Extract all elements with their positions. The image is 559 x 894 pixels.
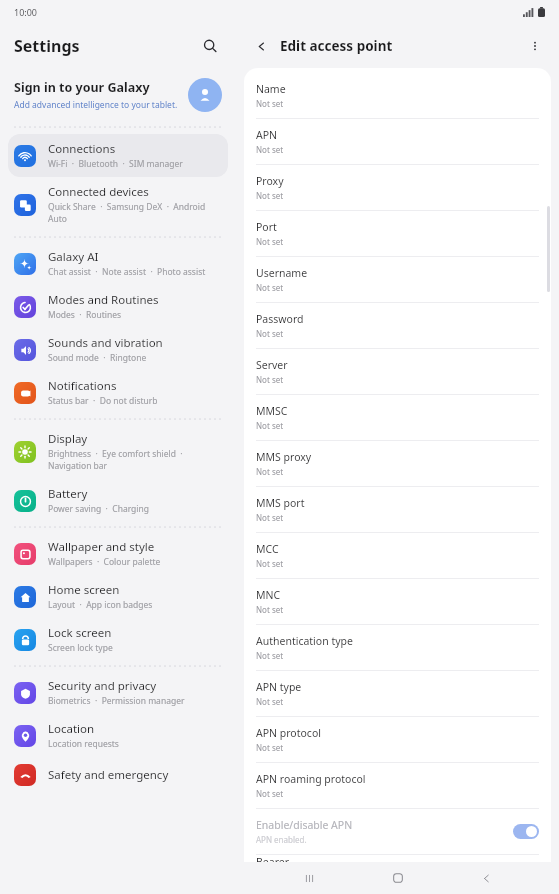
staticText: Biometrics · Permission manager (48, 695, 185, 707)
button[interactable]: Bearer (244, 855, 551, 862)
staticText: APN roaming protocol (256, 772, 366, 786)
staticText: Not set (256, 236, 284, 247)
staticText: Not set (256, 374, 284, 385)
staticText: Screen lock type (48, 642, 113, 654)
button[interactable]: APN protocol (244, 717, 551, 762)
staticText: Notifications (48, 378, 117, 394)
staticText: Location (48, 721, 95, 737)
staticText: Modes and Routines (48, 292, 159, 308)
staticText: Home screen (48, 582, 120, 598)
staticText: Not set (256, 650, 284, 661)
staticText: Not set (256, 512, 284, 523)
button[interactable]: More options (523, 34, 547, 58)
button[interactable]: APN (244, 119, 551, 164)
staticText: Connections (48, 141, 116, 157)
button[interactable]: Wallpaper and style (8, 532, 228, 575)
staticText: MMSC (256, 404, 288, 418)
button[interactable]: Safety and emergency (8, 757, 228, 793)
staticText: Galaxy AI (48, 249, 99, 265)
staticText: Wallpapers · Colour palette (48, 556, 161, 568)
staticText: APN (256, 128, 278, 142)
button[interactable]: Name (244, 73, 551, 118)
staticText: Wi-Fi · Bluetooth · SIM manager (48, 158, 183, 170)
staticText: Lock screen (48, 625, 112, 641)
button[interactable]: Username (244, 257, 551, 302)
button[interactable]: Lock screen (8, 618, 228, 661)
staticText: Not set (256, 282, 284, 293)
button[interactable]: Security and privacy (8, 671, 228, 714)
staticText: 10:00 (14, 6, 38, 18)
staticText: MNC (256, 588, 281, 602)
staticText: Security and privacy (48, 678, 157, 694)
button[interactable]: Sounds and vibration (8, 328, 228, 371)
staticText: Not set (256, 420, 284, 431)
button[interactable]: Battery (8, 479, 228, 522)
button[interactable]: Connected devices (8, 177, 228, 232)
button[interactable]: Password (244, 303, 551, 348)
button[interactable]: MMSC (244, 395, 551, 440)
staticText: Authentication type (256, 634, 353, 648)
button[interactable]: Galaxy AI (8, 242, 228, 285)
button[interactable]: Enable or disable APN (513, 824, 539, 839)
staticText: Port (256, 220, 277, 234)
staticText: Modes · Routines (48, 309, 122, 321)
button[interactable]: Sign in to your Galaxy (14, 78, 222, 112)
button[interactable]: Server (244, 349, 551, 394)
button[interactable]: APN roaming protocol (244, 763, 551, 808)
staticText: Not set (256, 788, 284, 799)
staticText: Not set (256, 604, 284, 615)
staticText: Display (48, 431, 88, 447)
staticText: Connected devices (48, 184, 149, 200)
button[interactable]: Port (244, 211, 551, 256)
staticText: Enable/disable APN (256, 818, 353, 832)
button[interactable]: Home screen (8, 575, 228, 618)
staticText: Sound mode · Ringtone (48, 352, 147, 364)
button[interactable]: Search (196, 32, 224, 60)
staticText: MMS port (256, 496, 305, 510)
staticText: Not set (256, 328, 284, 339)
button[interactable]: MMS port (244, 487, 551, 532)
staticText: APN protocol (256, 726, 321, 740)
staticText: Not set (256, 696, 284, 707)
staticText: Not set (256, 742, 284, 753)
staticText: Not set (256, 190, 284, 201)
button[interactable]: Notifications (8, 371, 228, 414)
button[interactable]: MNC (244, 579, 551, 624)
button[interactable]: Location (8, 714, 228, 757)
staticText: Brightness · Eye comfort shield · Naviga… (48, 448, 220, 472)
button[interactable]: Proxy (244, 165, 551, 210)
button[interactable]: APN type (244, 671, 551, 716)
staticText: Battery (48, 486, 88, 502)
button[interactable]: Enable/disable APN (244, 809, 551, 854)
button[interactable]: Connections (8, 134, 228, 177)
staticText: Status bar · Do not disturb (48, 395, 158, 407)
button[interactable]: Back (470, 862, 502, 894)
button[interactable]: Recent apps (293, 862, 325, 894)
staticText: Sounds and vibration (48, 335, 163, 351)
button[interactable]: MMS proxy (244, 441, 551, 486)
staticText: Server (256, 358, 288, 372)
button[interactable]: Authentication type (244, 625, 551, 670)
staticText: Add advanced intelligence to your tablet… (14, 99, 178, 111)
staticText: Not set (256, 98, 284, 109)
button[interactable]: MCC (244, 533, 551, 578)
button[interactable]: Back (250, 35, 272, 57)
staticText: Bearer (256, 855, 290, 862)
staticText: Layout · App icon badges (48, 599, 153, 611)
staticText: Edit access point (280, 37, 393, 55)
staticText: MMS proxy (256, 450, 312, 464)
staticText: Proxy (256, 174, 284, 188)
staticText: Not set (256, 144, 284, 155)
button[interactable]: Modes and Routines (8, 285, 228, 328)
staticText: Not set (256, 466, 284, 477)
button[interactable]: Home (382, 862, 414, 894)
staticText: Safety and emergency (48, 767, 169, 783)
staticText: Settings (14, 35, 80, 57)
staticText: Power saving · Charging (48, 503, 149, 515)
staticText: APN enabled. (256, 834, 307, 845)
staticText: Name (256, 82, 286, 96)
staticText: Location requests (48, 738, 119, 750)
button[interactable]: Display (8, 424, 228, 479)
staticText: APN type (256, 680, 302, 694)
staticText: Not set (256, 558, 284, 569)
